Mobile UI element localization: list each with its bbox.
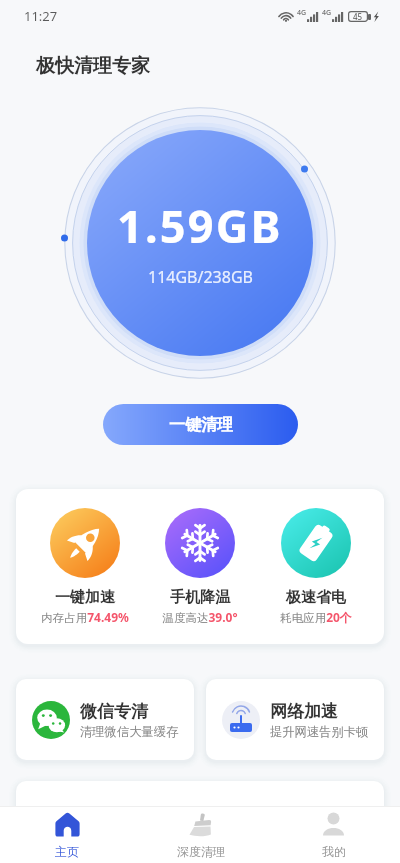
staticText: 深度清理 (177, 844, 225, 859)
button[interactable]: 极速省电 (261, 489, 371, 625)
button[interactable]: 微信专清 (16, 679, 194, 760)
button[interactable]: 深度清理 (134, 807, 267, 863)
staticText: 45 (353, 11, 363, 22)
button[interactable]: 一键加速 (30, 489, 140, 625)
staticText: 耗电应用20个 (280, 609, 352, 625)
staticText: 极速省电 (286, 588, 346, 607)
button[interactable]: 网络加速 (206, 679, 384, 760)
staticText: 手机降温 (170, 588, 230, 607)
staticText: 一键加速 (55, 588, 115, 607)
staticText: 4G (297, 8, 307, 18)
staticText: 微信专清 (80, 701, 148, 722)
staticText: 4G (322, 8, 332, 18)
staticText: 网络加速 (270, 701, 338, 722)
button[interactable]: 主页 (0, 807, 134, 863)
staticText: 内存占用74.49% (41, 609, 129, 625)
staticText: 一键清理 (169, 415, 233, 435)
staticText: 极快清理专家 (36, 54, 150, 78)
staticText: 清理微信大量缓存 (80, 724, 179, 739)
staticText: 主页 (55, 844, 79, 859)
button[interactable]: 手机降温 (145, 489, 255, 625)
staticText: 11:27 (24, 7, 58, 25)
staticText: 温度高达39.0° (162, 609, 238, 625)
button[interactable]: 我的 (267, 807, 400, 863)
staticText: 114GB/238GB (148, 266, 253, 288)
staticText: 提升网速告别卡顿 (270, 724, 369, 739)
button[interactable]: 一键清理 (103, 404, 298, 445)
staticText: 我的 (322, 844, 346, 859)
staticText: 1.59GB (117, 195, 283, 256)
